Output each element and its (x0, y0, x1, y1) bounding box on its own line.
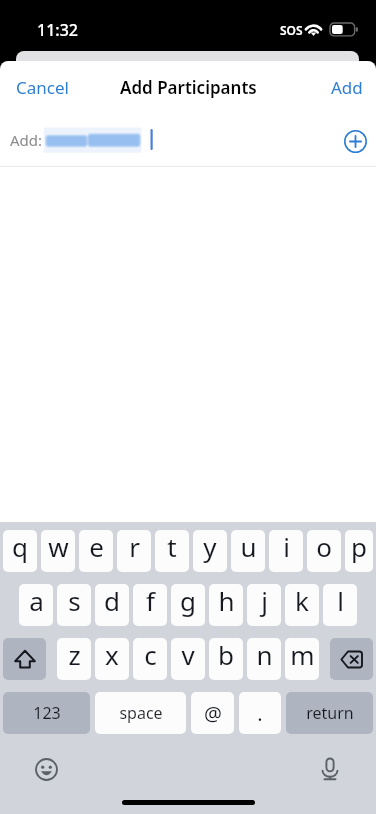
button[interactable]: p (345, 530, 373, 572)
staticText: k (295, 584, 309, 618)
staticText: p (351, 530, 367, 564)
staticText: Add (331, 76, 363, 99)
staticText: b (218, 638, 234, 672)
button[interactable]: s (57, 584, 91, 626)
button[interactable]: c (133, 638, 167, 680)
staticText: i (283, 530, 290, 564)
staticText: . (257, 700, 263, 727)
button[interactable]: return (286, 692, 373, 734)
staticText: e (89, 530, 104, 564)
button[interactable]: Add (315, 66, 376, 109)
button[interactable]: Add contact (339, 125, 371, 157)
button[interactable]: 123 (3, 692, 90, 734)
staticText: f (146, 584, 155, 618)
button[interactable]: . (239, 692, 281, 734)
staticText: Add Participants (120, 76, 257, 99)
staticText: 11:32 (37, 19, 78, 41)
button[interactable]: z (57, 638, 91, 680)
staticText: m (290, 638, 315, 672)
button[interactable]: u (231, 530, 265, 572)
staticText: w (48, 530, 69, 564)
button[interactable]: Backspace (330, 638, 373, 680)
staticText: x (105, 638, 119, 672)
button[interactable]: f (133, 584, 167, 626)
staticText: 123 (33, 702, 61, 724)
staticText: z (68, 638, 81, 672)
button[interactable]: a (19, 584, 53, 626)
button[interactable]: Dictation (315, 754, 345, 784)
button[interactable]: m (285, 638, 319, 680)
button[interactable]: space (95, 692, 186, 734)
button[interactable]: d (95, 584, 129, 626)
button[interactable]: b (209, 638, 243, 680)
button[interactable]: o (307, 530, 341, 572)
button[interactable]: y (193, 530, 227, 572)
staticText: r (129, 530, 140, 564)
staticText: return (306, 702, 354, 724)
staticText: Cancel (16, 76, 69, 99)
button[interactable]: @ (191, 692, 234, 734)
staticText: s (68, 584, 81, 618)
button[interactable]: r (117, 530, 151, 572)
staticText: u (240, 530, 257, 564)
staticText: t (167, 530, 177, 564)
button[interactable]: j (247, 584, 281, 626)
staticText: a (29, 584, 44, 618)
staticText: v (181, 638, 195, 672)
button[interactable]: Cancel (0, 66, 85, 109)
button[interactable]: t (155, 530, 189, 572)
staticText: g (180, 584, 196, 618)
button[interactable]: h (209, 584, 243, 626)
button[interactable]: v (171, 638, 205, 680)
button[interactable]: n (247, 638, 281, 680)
staticText: y (203, 530, 217, 564)
button[interactable]: Shift (3, 638, 46, 680)
staticText: space (119, 702, 163, 724)
button[interactable]: g (171, 584, 205, 626)
staticText: c (144, 638, 157, 672)
button[interactable]: e (79, 530, 113, 572)
staticText: q (12, 530, 28, 564)
button[interactable]: q (3, 530, 37, 572)
button[interactable]: l (323, 584, 357, 626)
staticText: @ (204, 700, 222, 727)
staticText: h (218, 584, 235, 618)
staticText: n (256, 638, 273, 672)
staticText: SOS (280, 22, 303, 38)
button[interactable]: x (95, 638, 129, 680)
button[interactable]: k (285, 584, 319, 626)
staticText: d (104, 584, 120, 618)
button[interactable]: Emoji (31, 754, 61, 784)
staticText: o (316, 530, 332, 564)
button[interactable]: w (41, 530, 75, 572)
staticText: l (337, 584, 344, 618)
staticText: Add: (10, 130, 43, 150)
staticText: j (261, 584, 268, 618)
button[interactable]: i (269, 530, 303, 572)
